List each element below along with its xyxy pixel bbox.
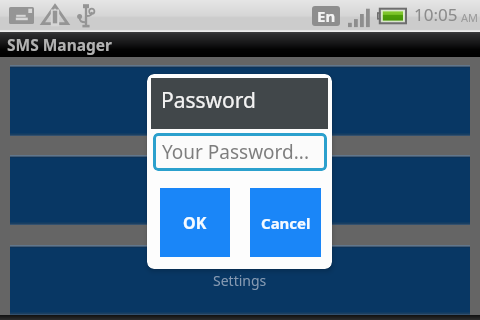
other: New message	[9, 7, 34, 24]
staticText: 10:05	[414, 3, 458, 26]
staticText: En	[317, 6, 336, 26]
button[interactable]: Sent	[10, 155, 470, 225]
button[interactable]: Your Password...	[153, 133, 327, 171]
other: Battery	[377, 8, 406, 24]
staticText: Inbox	[221, 91, 259, 110]
staticText: Settings	[213, 271, 267, 290]
staticText: OK	[183, 212, 207, 234]
button[interactable]: OK	[160, 188, 230, 257]
button[interactable]: Settings	[10, 245, 470, 315]
staticText: SMS Manager	[7, 34, 112, 55]
staticText: Cancel	[261, 213, 311, 233]
staticText: AM	[461, 10, 479, 25]
staticText: Password	[161, 86, 256, 115]
other: USB connected	[76, 3, 96, 28]
button[interactable]: Inbox	[10, 65, 470, 136]
staticText: Sent	[225, 181, 255, 200]
button[interactable]: Cancel	[250, 188, 321, 257]
other: Signal strength	[348, 9, 370, 29]
staticText: Your Password...	[162, 139, 310, 165]
other: Warning	[41, 4, 69, 25]
